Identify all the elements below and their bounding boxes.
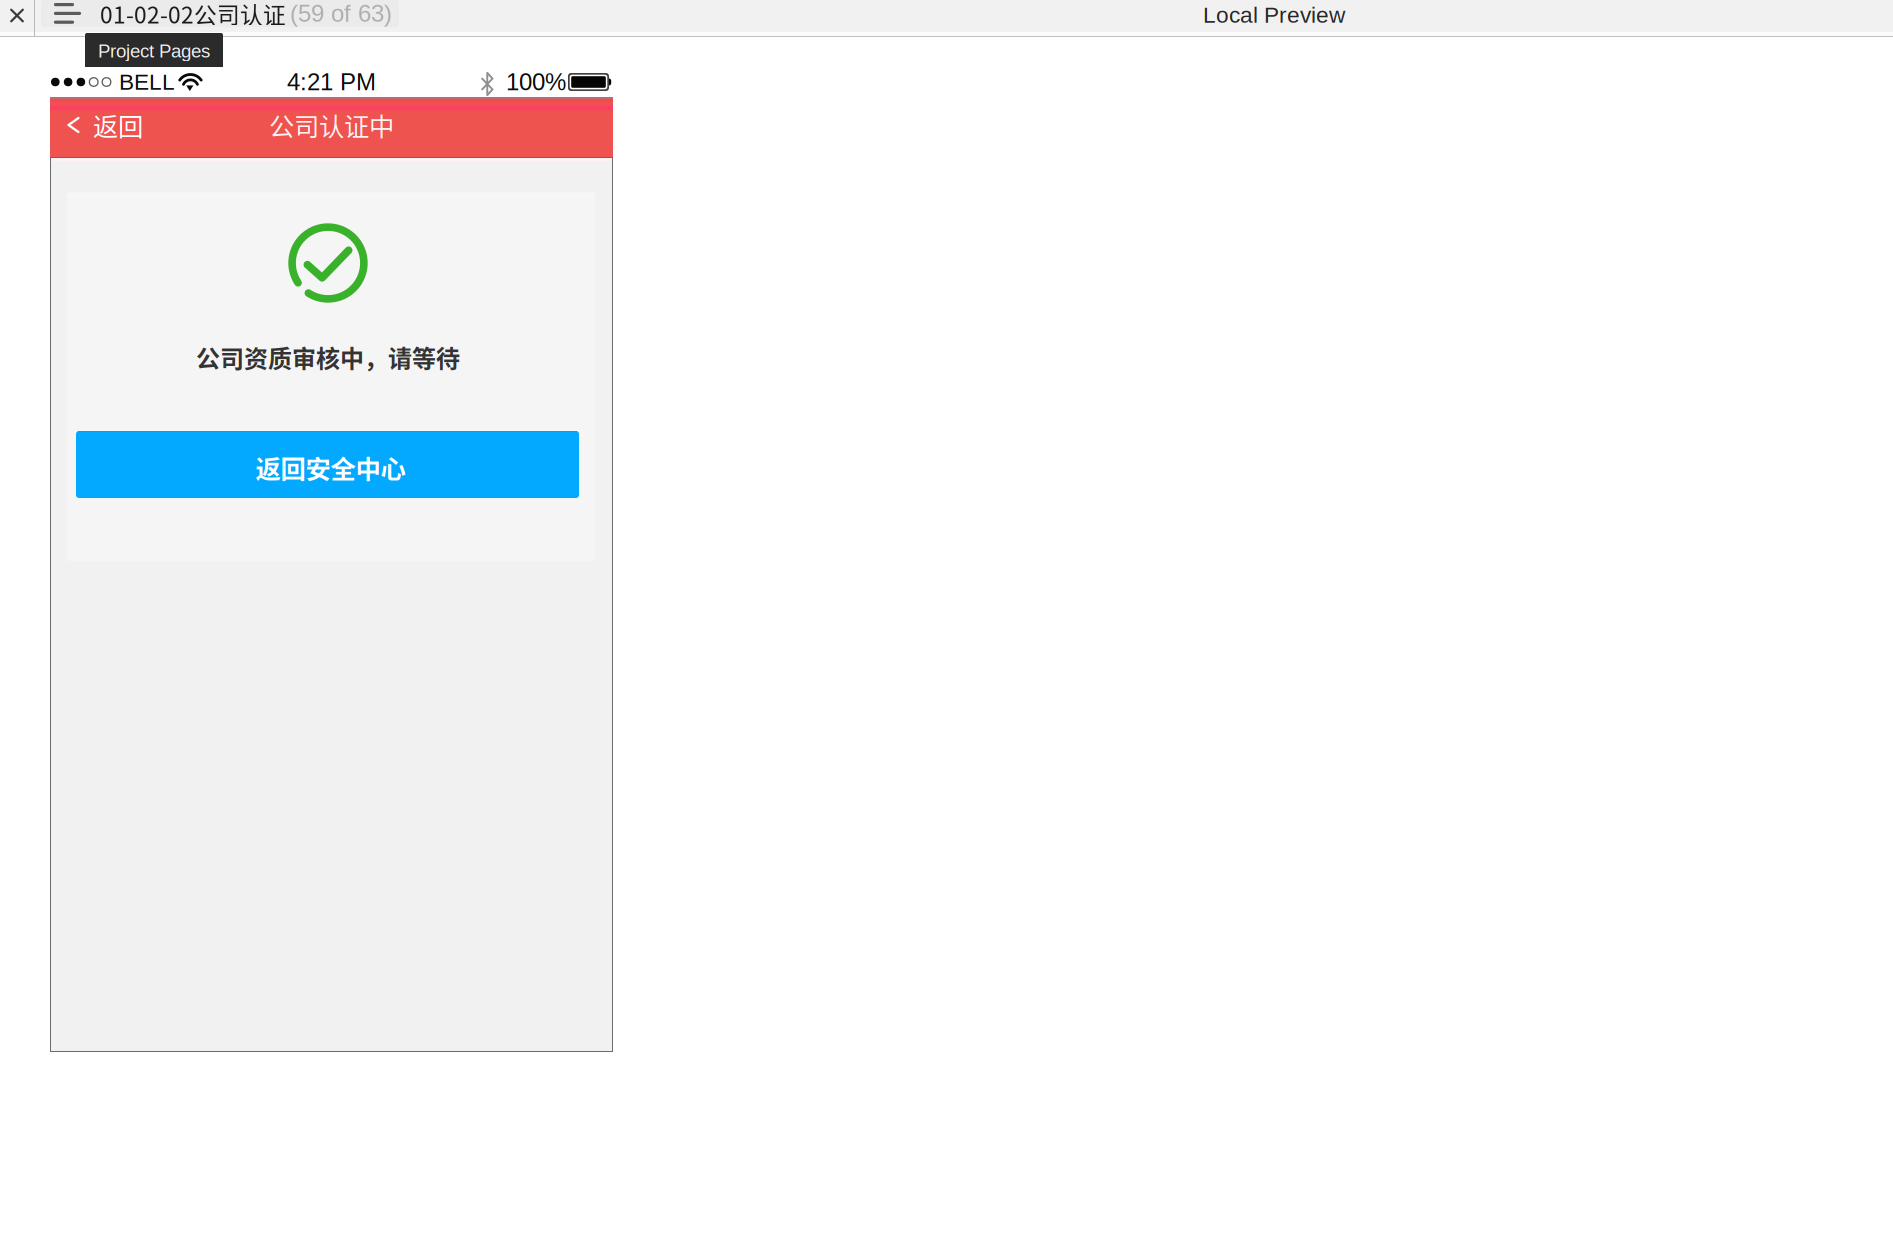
staticText: 公司认证中 (269, 107, 394, 143)
staticText: Local Preview (1203, 2, 1345, 28)
staticText: (59 of 63) (290, 0, 392, 27)
staticText: 公司资质审核中，请等待 (196, 340, 460, 374)
staticText: 返回 (93, 107, 143, 143)
staticText: 4:21 PM (287, 69, 376, 95)
button[interactable]: 返回安全中心 (76, 431, 579, 498)
button[interactable]: 01-02-02公司认证 (41, 0, 399, 27)
staticText: 100% (506, 69, 566, 95)
button[interactable]: 返回 (67, 97, 159, 157)
staticText: BELL (119, 69, 175, 95)
button[interactable]: Close (0, 0, 34, 31)
staticText: Project Pages (98, 41, 210, 61)
staticText: 返回安全中心 (255, 449, 405, 486)
staticText: 01-02-02公司认证 (100, 0, 286, 30)
